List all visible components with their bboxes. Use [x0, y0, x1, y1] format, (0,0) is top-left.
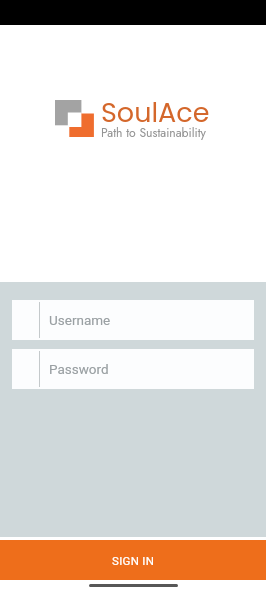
button[interactable]: Password: [12, 349, 254, 389]
staticText: Password: [49, 361, 109, 377]
other: Home: [0, 580, 266, 592]
button[interactable]: SIGN IN: [0, 540, 266, 580]
staticText: Path to Sustainability: [101, 124, 206, 142]
staticText: SoulAce: [101, 94, 210, 132]
staticText: Username: [49, 312, 111, 328]
staticText: SIGN IN: [112, 554, 155, 567]
button[interactable]: Username: [12, 300, 254, 340]
